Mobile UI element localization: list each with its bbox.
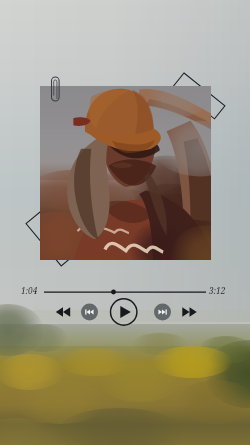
button[interactable]: Seek bar — [40, 286, 212, 300]
button[interactable]: Rewind — [52, 302, 74, 324]
button[interactable]: Previous track — [80, 303, 100, 323]
button[interactable]: Album artwork — [40, 86, 211, 260]
button[interactable]: Play — [110, 298, 138, 326]
staticText: 3:12 — [209, 285, 226, 296]
button[interactable]: Next track — [153, 303, 173, 323]
staticText: 1:04 — [21, 285, 38, 296]
button[interactable]: Fast forward — [179, 302, 201, 324]
